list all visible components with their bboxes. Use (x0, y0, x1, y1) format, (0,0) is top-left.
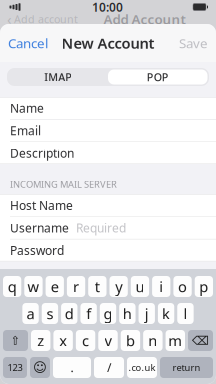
staticText: Add Account (103, 10, 185, 28)
button[interactable]: q (3, 276, 21, 297)
button[interactable]: u (131, 276, 149, 297)
staticText: s (46, 304, 53, 323)
staticText: 123 (7, 361, 22, 374)
staticText: g (103, 304, 112, 323)
staticText: Email (10, 122, 41, 138)
staticText: . (70, 359, 73, 375)
button[interactable]: Delete (188, 330, 213, 351)
staticText: New Account (61, 33, 154, 53)
button[interactable]: IMAP (8, 69, 108, 84)
button[interactable]: g (100, 303, 116, 324)
staticText: Description (10, 145, 74, 161)
button[interactable]: Cancel (0, 28, 56, 58)
staticText: Host Name (10, 197, 73, 213)
button[interactable]: m (166, 330, 185, 351)
button[interactable]: .co.uk (127, 357, 157, 378)
button[interactable]: a (22, 303, 39, 324)
button[interactable]: z (31, 330, 50, 351)
button[interactable]: POP (108, 69, 207, 84)
button[interactable]: v (98, 330, 118, 351)
button[interactable]: Shift (3, 330, 28, 351)
button[interactable]: y (109, 276, 128, 297)
staticText: POP (147, 70, 169, 84)
staticText: m (168, 331, 182, 350)
staticText: return (172, 361, 200, 374)
staticText: r (73, 277, 79, 296)
staticText: Add account (14, 12, 78, 26)
button[interactable]: Email (0, 119, 216, 141)
button[interactable]: b (121, 330, 140, 351)
button[interactable]: Emoji (30, 357, 50, 378)
button[interactable]: . (53, 357, 91, 378)
staticText: x (59, 331, 67, 350)
button[interactable]: e (46, 276, 64, 297)
button[interactable]: / (94, 357, 124, 378)
staticText: ☺ (33, 360, 47, 375)
button[interactable]: r (67, 276, 85, 297)
staticText: ⌫ (192, 334, 209, 347)
staticText: / (107, 359, 111, 375)
button[interactable]: x (53, 330, 73, 351)
staticText: w (27, 277, 39, 296)
button[interactable]: h (119, 303, 136, 324)
button[interactable]: f (80, 303, 97, 324)
staticText: d (65, 304, 74, 323)
staticText: Save (179, 34, 208, 52)
staticText: IMAP (44, 70, 72, 84)
staticText: ⇧ (10, 334, 20, 347)
staticText: h (123, 304, 132, 323)
button[interactable]: c (76, 330, 95, 351)
staticText: 10:00 (92, 0, 123, 15)
staticText: z (37, 331, 44, 350)
staticText: v (104, 331, 111, 350)
button[interactable]: o (173, 276, 192, 297)
staticText: t (95, 277, 100, 296)
staticText: u (135, 277, 144, 296)
staticText: j (145, 304, 149, 323)
staticText: f (86, 304, 91, 323)
staticText: Cancel (8, 34, 48, 52)
button[interactable]: Save (171, 28, 216, 58)
button[interactable]: Username (0, 217, 216, 239)
staticText: ‹ (7, 9, 12, 29)
staticText: l (183, 304, 187, 323)
staticText: .co.uk (128, 361, 155, 374)
button[interactable]: Password (0, 239, 216, 261)
button[interactable]: n (143, 330, 162, 351)
staticText: a (26, 304, 34, 323)
button[interactable]: Host Name (0, 194, 216, 216)
button[interactable]: t (88, 276, 106, 297)
staticText: Required (76, 220, 126, 236)
staticText: b (126, 331, 135, 350)
button[interactable]: l (177, 303, 194, 324)
button[interactable]: s (42, 303, 58, 324)
staticText: INCOMING MAIL SERVER (10, 178, 117, 190)
staticText: o (178, 277, 187, 296)
staticText: n (148, 331, 157, 350)
button[interactable]: Description (0, 142, 216, 164)
button[interactable]: return (160, 357, 213, 378)
staticText: i (159, 277, 163, 296)
button[interactable]: Name (0, 97, 216, 119)
staticText: Password (10, 242, 64, 258)
staticText: c (82, 331, 89, 350)
button[interactable]: j (138, 303, 155, 324)
staticText: Username (10, 220, 69, 236)
button[interactable]: i (152, 276, 170, 297)
button[interactable]: w (24, 276, 43, 297)
staticText: y (115, 277, 122, 296)
button[interactable]: d (61, 303, 77, 324)
button[interactable]: p (195, 276, 213, 297)
staticText: p (199, 277, 208, 296)
staticText: Name (10, 100, 44, 116)
button[interactable]: 123 (3, 357, 27, 378)
staticText: e (51, 277, 59, 296)
staticText: q (8, 277, 17, 296)
button[interactable]: k (158, 303, 174, 324)
staticText: k (162, 304, 170, 323)
